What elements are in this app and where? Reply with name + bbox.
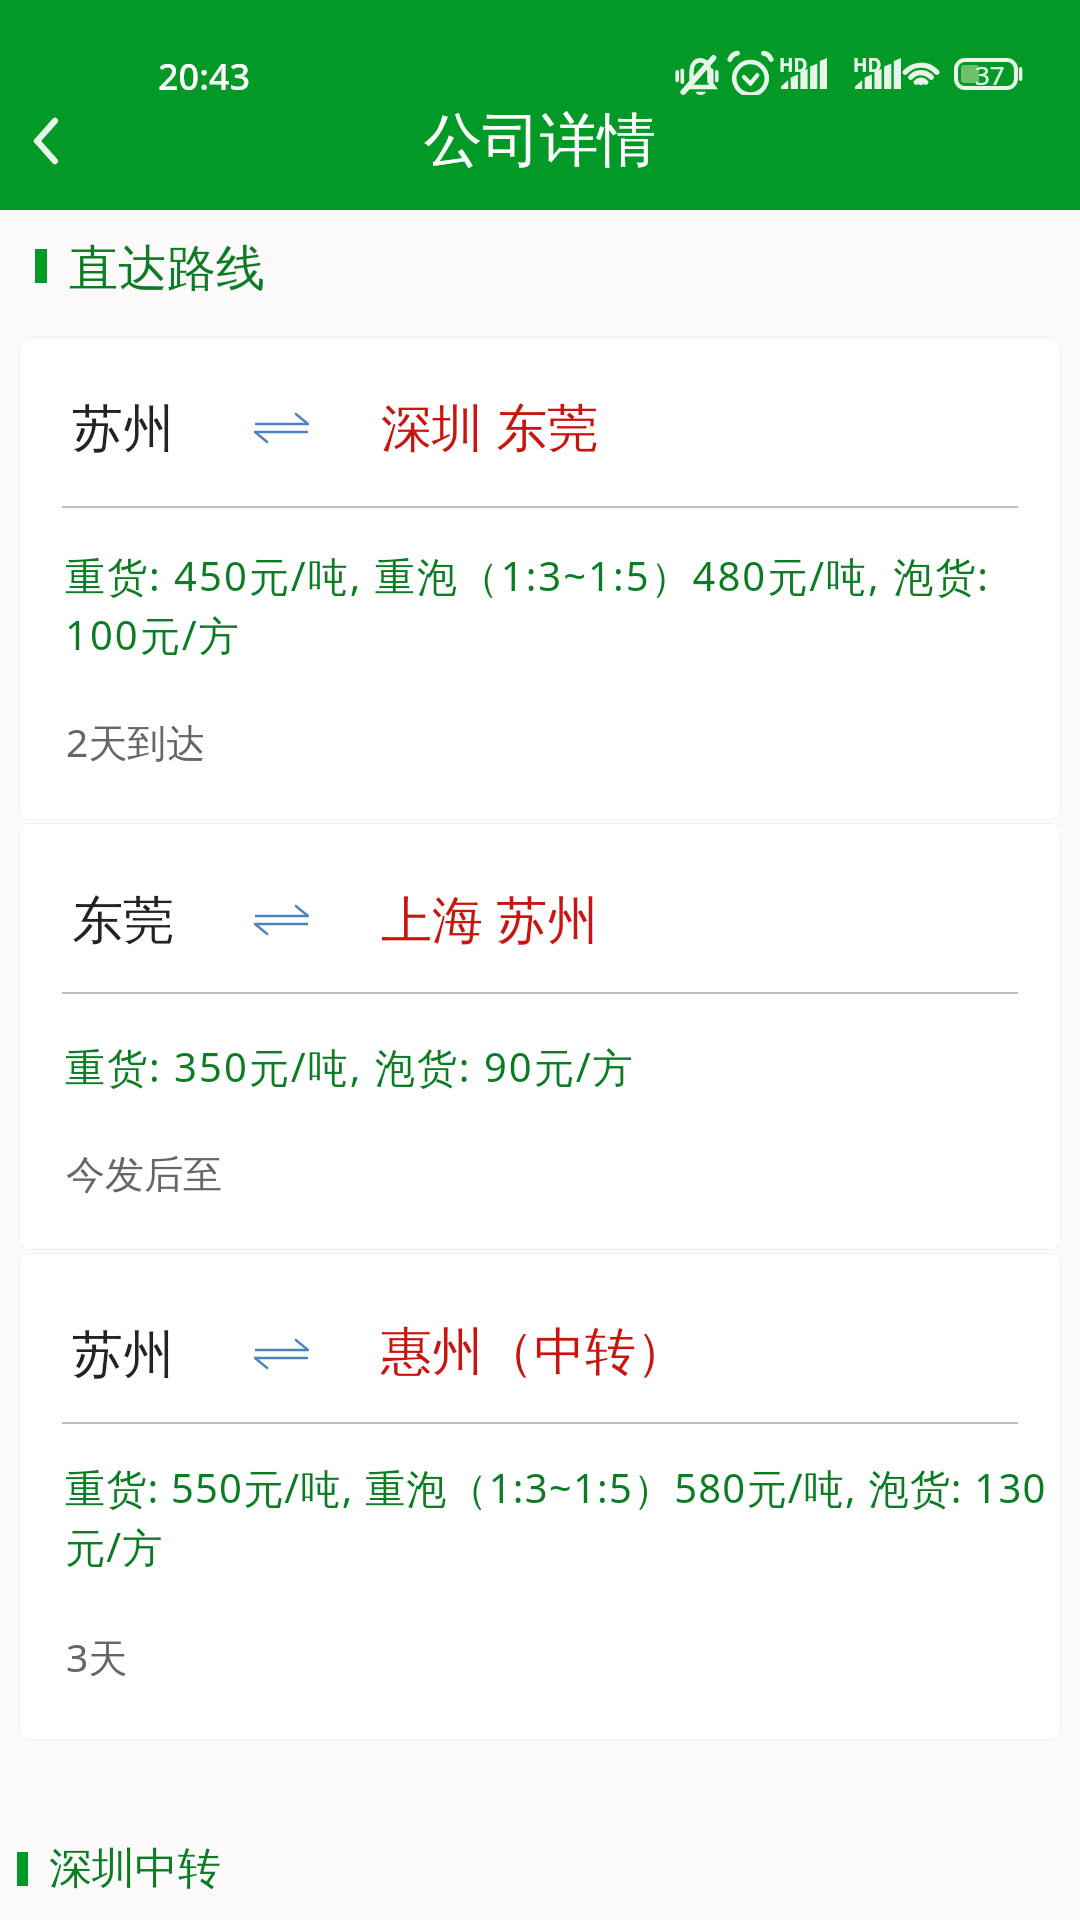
staticText: 2天到达 — [66, 715, 206, 768]
staticText: 苏州 — [72, 1323, 174, 1387]
staticText: 直达路线 — [69, 238, 265, 294]
staticText: 重货: 550元/吨, 重泡（1:3~1:5）580元/吨, 泡货: 130元/… — [65, 1460, 1061, 1574]
button[interactable]: 苏州 — [19, 1253, 1061, 1740]
staticText: 苏州 — [72, 397, 174, 461]
staticText: 惠州（中转） — [381, 1320, 687, 1384]
staticText: 20:43 — [158, 52, 251, 101]
staticText: 重货: 450元/吨, 重泡（1:3~1:5）480元/吨, 泡货: 100元/… — [65, 548, 1053, 662]
staticText: 今发后至 — [66, 1150, 222, 1199]
staticText: 东莞 — [72, 889, 174, 953]
staticText: 深圳中转 — [49, 1842, 221, 1896]
staticText: 37 — [975, 57, 1005, 89]
button[interactable]: 东莞 — [19, 823, 1061, 1250]
staticText: 公司详情 — [424, 104, 656, 177]
staticText: HD — [853, 52, 882, 78]
staticText: HD — [779, 52, 808, 78]
staticText: 深圳 东莞 — [381, 391, 599, 461]
button[interactable]: Back — [0, 95, 104, 210]
button[interactable]: 直达路线 — [0, 238, 1080, 294]
staticText: 重货: 350元/吨, 泡货: 90元/方 — [65, 1039, 1053, 1094]
staticText: 上海 苏州 — [381, 883, 599, 953]
button[interactable]: 苏州 — [19, 337, 1061, 820]
staticText: 3天 — [66, 1630, 128, 1683]
button[interactable]: 深圳中转 — [0, 1841, 1080, 1897]
